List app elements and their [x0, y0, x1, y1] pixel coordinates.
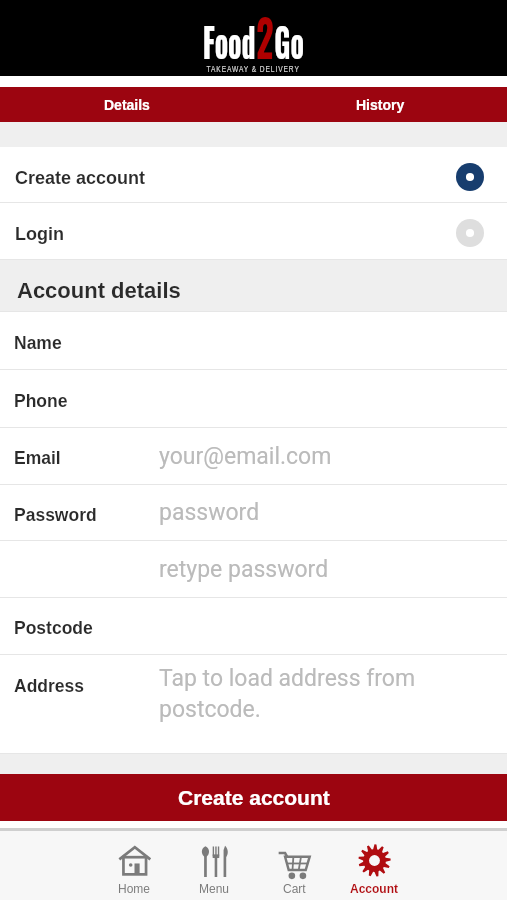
staticText: Postcode: [14, 618, 93, 638]
button[interactable]: Create account: [0, 147, 507, 202]
staticText: Name: [14, 333, 62, 353]
button[interactable]: retype password: [0, 541, 507, 597]
button[interactable]: Phone: [0, 370, 507, 427]
staticText: Create account: [178, 786, 330, 809]
staticText: Menu: [199, 882, 230, 895]
button[interactable]: Address: [0, 655, 507, 753]
button[interactable]: Name: [0, 312, 507, 369]
staticText: Tap to load address from postcode.: [159, 665, 416, 722]
button[interactable]: Account: [334, 831, 414, 900]
staticText: 2: [256, 0, 274, 74]
button[interactable]: Cart: [254, 831, 334, 900]
staticText: Password: [14, 505, 97, 525]
staticText: Address: [14, 676, 85, 696]
button[interactable]: Create account: [0, 774, 507, 821]
staticText: Go: [274, 10, 304, 71]
staticText: Account: [350, 882, 398, 895]
staticText: your@email.com: [159, 443, 332, 470]
button[interactable]: Email: [0, 428, 507, 484]
staticText: Email: [14, 448, 61, 468]
button[interactable]: Details: [0, 87, 253, 122]
button[interactable]: Menu: [174, 831, 254, 900]
staticText: password: [159, 499, 260, 526]
staticText: Food: [203, 10, 256, 71]
staticText: History: [356, 97, 405, 113]
staticText: Home: [118, 882, 151, 895]
staticText: Create account: [15, 168, 456, 188]
staticText: TAKEAWAY & DELIVERY: [206, 64, 300, 74]
button[interactable]: Postcode: [0, 598, 507, 654]
button[interactable]: Login: [0, 203, 507, 259]
staticText: Login: [15, 224, 456, 244]
staticText: Details: [104, 97, 150, 113]
staticText: Phone: [14, 391, 68, 411]
button[interactable]: Password: [0, 485, 507, 540]
button[interactable]: Home: [94, 831, 174, 900]
button[interactable]: History: [253, 87, 507, 122]
staticText: Cart: [283, 882, 306, 895]
staticText: retype password: [159, 556, 329, 583]
staticText: Account details: [17, 278, 181, 303]
